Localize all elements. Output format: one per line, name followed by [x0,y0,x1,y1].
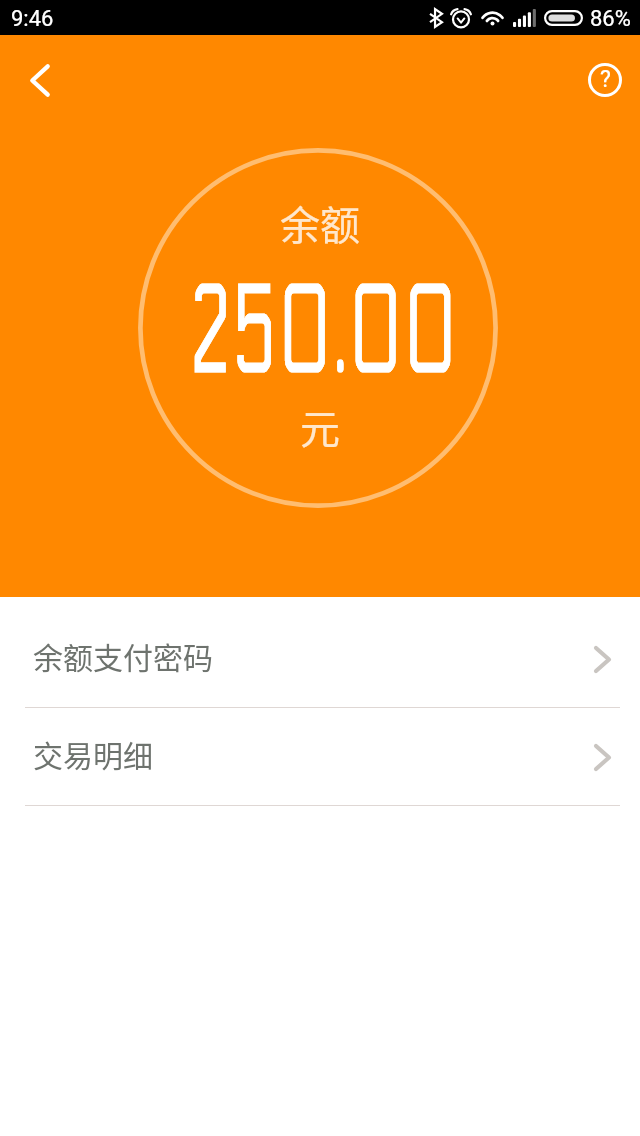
staticText: 交易明细 [33,732,153,775]
button[interactable]: Back [0,35,78,125]
staticText: 余额 [280,194,360,252]
button[interactable]: Help [570,35,640,125]
staticText: 元 [300,398,340,456]
staticText: 250.00 [190,258,459,406]
staticText: 250.00 [190,258,459,406]
staticText: 9:46 [11,6,54,32]
staticText: 86% [590,6,631,32]
staticText: 余额支付密码 [33,634,213,677]
button[interactable]: 交易明细 [0,708,640,806]
button[interactable]: 余额支付密码 [0,610,640,708]
staticText: ? [600,66,611,93]
